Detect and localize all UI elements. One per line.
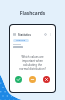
- staticText: Statistics: [18, 33, 31, 37]
- button[interactable]: Which values are important when calculat…: [14, 51, 51, 74]
- button[interactable]: Menu: [13, 33, 16, 36]
- staticText: Which values are important when calculat…: [19, 55, 46, 71]
- button[interactable]: Learning: [13, 39, 29, 42]
- button[interactable]: Wrong: [43, 76, 50, 83]
- staticText: Learning: [16, 39, 26, 42]
- button[interactable]: Not sure: [29, 76, 36, 83]
- button[interactable]: Settings: [44, 33, 47, 36]
- button[interactable]: More options: [49, 33, 52, 36]
- staticText: Flashcards: [0, 10, 65, 17]
- button[interactable]: Correct: [15, 76, 22, 83]
